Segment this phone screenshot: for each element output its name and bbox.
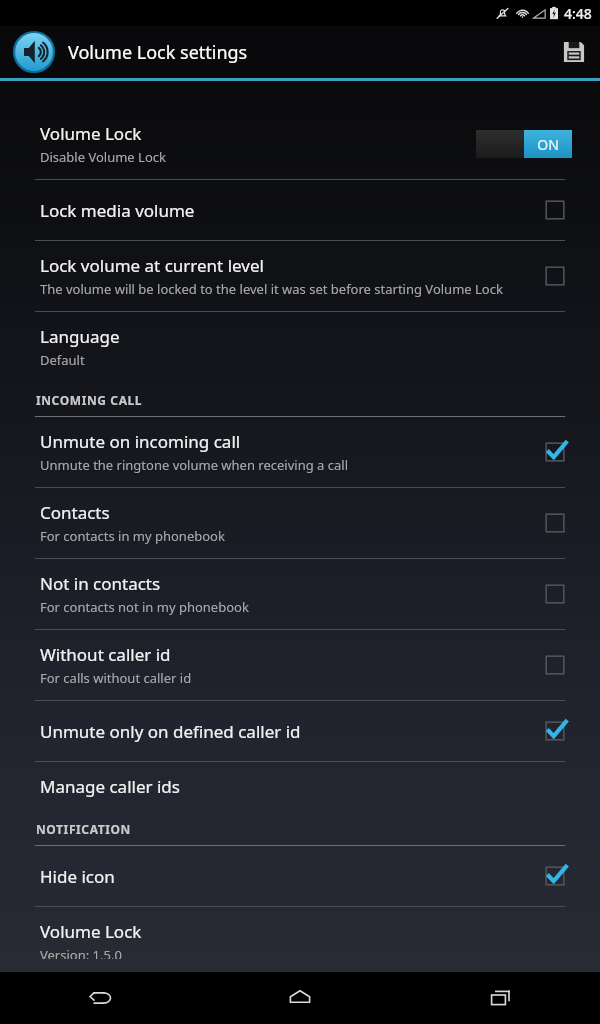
button[interactable]: Unchecked <box>538 648 572 682</box>
staticText: Language <box>40 325 120 348</box>
staticText: Not in contacts <box>40 572 161 595</box>
staticText: Manage caller ids <box>40 775 180 798</box>
button[interactable]: Contacts <box>0 488 600 558</box>
button[interactable]: Without caller id <box>0 630 600 700</box>
staticText: Lock media volume <box>40 199 195 222</box>
staticText: ON <box>537 135 559 154</box>
staticText: INCOMING CALL <box>36 392 143 408</box>
button[interactable]: Lock volume at current level <box>0 241 600 311</box>
button[interactable]: Checked <box>538 714 572 748</box>
button[interactable]: Save <box>548 26 600 78</box>
button[interactable]: Volume Lock toggle, on <box>476 130 572 158</box>
button[interactable]: Unmute only on defined caller id <box>0 701 600 761</box>
staticText: Without caller id <box>40 643 171 666</box>
button[interactable]: Back <box>0 972 200 1024</box>
button[interactable]: Hide icon <box>0 846 600 906</box>
button[interactable]: Language <box>0 312 600 382</box>
button[interactable]: Manage caller ids <box>0 762 600 811</box>
button[interactable]: Unchecked <box>538 506 572 540</box>
staticText: Contacts <box>40 501 110 524</box>
staticText: Default <box>40 351 85 369</box>
staticText: The volume will be locked to the level i… <box>40 280 503 298</box>
staticText: For contacts not in my phonebook <box>40 598 249 616</box>
staticText: Volume Lock <box>40 122 142 145</box>
button[interactable]: Unchecked <box>538 577 572 611</box>
staticText: Version: 1.5.0 <box>40 946 122 959</box>
staticText: Disable Volume Lock <box>40 148 166 166</box>
staticText: NOTIFICATION <box>36 821 131 837</box>
button[interactable]: Lock media volume <box>0 180 600 240</box>
staticText: For contacts in my phonebook <box>40 527 225 545</box>
staticText: Volume Lock <box>40 920 142 943</box>
button[interactable]: Unchecked <box>538 193 572 227</box>
staticText: Volume Lock settings <box>68 40 548 65</box>
button[interactable]: Volume Lock <box>0 109 600 179</box>
button[interactable]: Checked <box>538 859 572 893</box>
staticText: 4:48 <box>564 4 592 23</box>
button[interactable]: Volume Lock <box>0 907 600 972</box>
staticText: Unmute only on defined caller id <box>40 720 301 743</box>
button[interactable]: Not in contacts <box>0 559 600 629</box>
button[interactable]: Recents <box>400 972 600 1024</box>
staticText: For calls without caller id <box>40 669 192 687</box>
staticText: Unmute the ringtone volume when receivin… <box>40 456 348 474</box>
staticText: Hide icon <box>40 865 115 888</box>
button[interactable]: Unmute on incoming call <box>0 417 600 487</box>
button[interactable]: Home <box>200 972 400 1024</box>
button[interactable]: Checked <box>538 435 572 469</box>
staticText: Lock volume at current level <box>40 254 264 277</box>
staticText: Unmute on incoming call <box>40 430 241 453</box>
button[interactable]: Unchecked <box>538 259 572 293</box>
